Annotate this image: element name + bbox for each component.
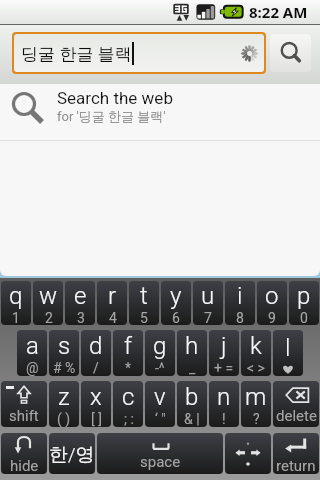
staticText: * xyxy=(125,360,132,376)
staticText: v xyxy=(154,383,166,411)
staticText: delete xyxy=(276,407,317,425)
staticText: g xyxy=(153,332,167,360)
staticText: ! xyxy=(222,411,226,427)
staticText: return xyxy=(276,457,316,474)
button[interactable]: q xyxy=(1,281,31,325)
staticText: w xyxy=(39,282,58,310)
button[interactable]: Shift xyxy=(1,381,47,427)
staticText: space xyxy=(140,453,181,471)
staticText: < > xyxy=(247,360,265,376)
staticText: hide xyxy=(10,457,39,474)
staticText: shift xyxy=(9,407,39,425)
button[interactable]: k xyxy=(241,330,271,376)
button[interactable]: b xyxy=(177,381,207,427)
staticText: q xyxy=(9,282,23,310)
staticText: 9 xyxy=(268,310,276,325)
staticText: d xyxy=(89,332,103,360)
button[interactable]: y xyxy=(161,281,191,325)
staticText: # % xyxy=(53,360,76,376)
staticText: + = xyxy=(214,360,234,376)
staticText: 2 xyxy=(45,310,53,325)
staticText: ? xyxy=(253,411,260,427)
staticText: ; : xyxy=(124,411,134,427)
button[interactable]: u xyxy=(193,281,223,325)
button[interactable]: l xyxy=(273,330,303,376)
button[interactable]: Hide keyboard xyxy=(1,433,47,474)
staticText: p xyxy=(297,282,311,310)
button[interactable]: Space xyxy=(97,433,223,474)
staticText: x xyxy=(90,383,102,411)
staticText: Search the web xyxy=(57,88,173,108)
button[interactable]: m xyxy=(241,381,271,427)
button[interactable]: Return xyxy=(273,433,319,474)
button[interactable]: f xyxy=(113,330,143,376)
button[interactable]: Delete xyxy=(273,381,319,427)
staticText: 4 xyxy=(109,310,117,325)
staticText: h xyxy=(185,332,199,360)
button[interactable]: Search xyxy=(270,34,311,72)
staticText: f xyxy=(124,332,132,360)
staticText: & | xyxy=(184,411,200,427)
staticText: s xyxy=(58,332,71,360)
button[interactable]: n xyxy=(209,381,239,427)
staticText: r xyxy=(108,282,117,310)
staticText: _ xyxy=(189,360,196,376)
staticText: ( ) xyxy=(57,411,71,427)
button[interactable]: h xyxy=(177,330,207,376)
staticText: y xyxy=(170,282,182,310)
staticText: 5 xyxy=(140,310,148,325)
staticText: j xyxy=(221,332,227,360)
staticText: u xyxy=(201,282,215,310)
staticText: 6 xyxy=(172,310,180,325)
staticText: 3 xyxy=(77,310,85,325)
staticText: 8 xyxy=(236,310,244,325)
staticText: c xyxy=(122,383,135,411)
button[interactable]: g xyxy=(145,330,175,376)
button[interactable]: r xyxy=(97,281,127,325)
button[interactable]: x xyxy=(81,381,111,427)
button[interactable]: t xyxy=(129,281,159,325)
button[interactable]: Search the web xyxy=(0,84,320,140)
staticText: 0 xyxy=(300,310,308,325)
button[interactable]: z xyxy=(49,381,79,427)
staticText: for '딩굴 한글 블랙' xyxy=(57,108,166,124)
staticText: e xyxy=(74,282,87,310)
staticText: [ ] xyxy=(91,411,102,427)
staticText: m xyxy=(245,383,267,411)
staticText: ‘ " xyxy=(155,411,166,427)
button[interactable]: i xyxy=(225,281,255,325)
staticText: 8:22 AM xyxy=(249,2,308,22)
button[interactable]: p xyxy=(289,281,319,325)
staticText: i xyxy=(237,282,243,310)
staticText: k xyxy=(250,332,262,360)
staticText: z xyxy=(58,383,70,411)
button[interactable]: a xyxy=(17,330,47,376)
staticText: n xyxy=(217,383,231,411)
staticText: 한/영 xyxy=(49,443,95,467)
staticText: b xyxy=(185,383,199,411)
staticText: -^ xyxy=(155,360,165,376)
staticText: 딩굴 한글 블랙 xyxy=(21,42,132,65)
button[interactable]: v xyxy=(145,381,175,427)
button[interactable]: d xyxy=(81,330,111,376)
button[interactable]: Arrow keys xyxy=(225,433,271,474)
button[interactable]: e xyxy=(65,281,95,325)
button[interactable]: 한/영 xyxy=(49,433,95,474)
button[interactable]: s xyxy=(49,330,79,376)
button[interactable]: w xyxy=(33,281,63,325)
button[interactable]: 딩굴 한글 블랙 xyxy=(14,34,264,72)
staticText: o xyxy=(265,282,279,310)
staticText: a xyxy=(26,332,39,360)
staticText: 7 xyxy=(204,310,212,325)
button[interactable]: j xyxy=(209,330,239,376)
staticText: t xyxy=(140,282,148,310)
staticText: 1 xyxy=(12,310,20,325)
staticText: @ xyxy=(26,360,39,376)
button[interactable]: c xyxy=(113,381,143,427)
button[interactable]: o xyxy=(257,281,287,325)
staticText: l xyxy=(285,334,291,362)
staticText: / xyxy=(93,360,99,376)
